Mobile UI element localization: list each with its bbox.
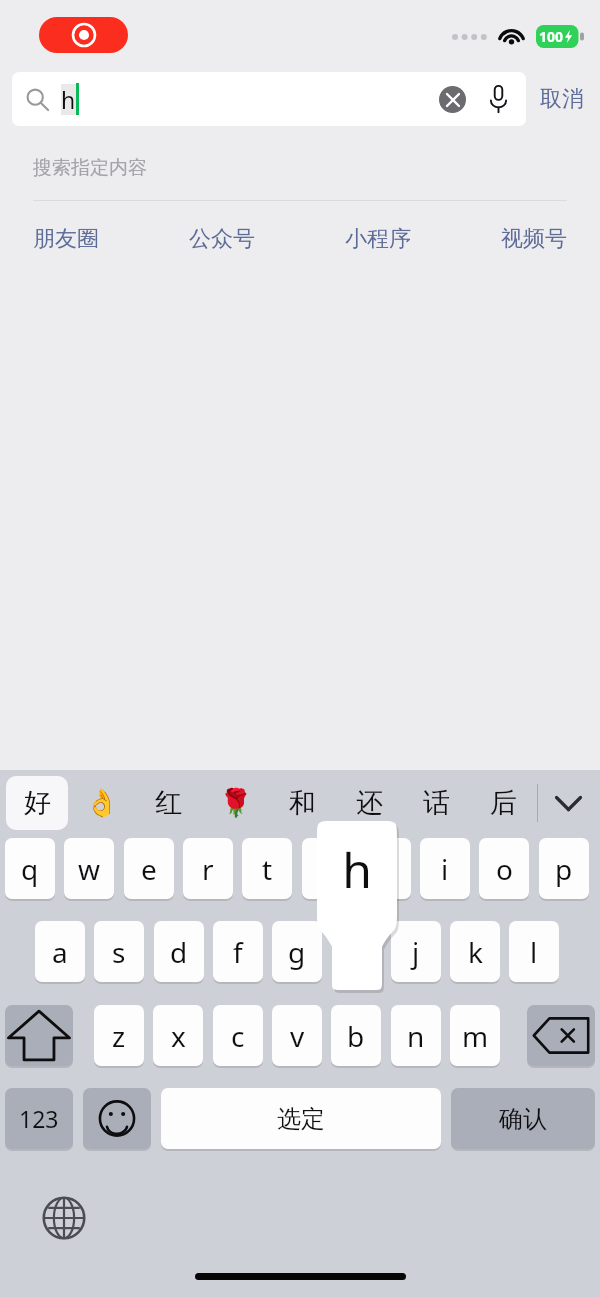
button[interactable]: 视频号 (495, 217, 573, 261)
staticText: 公众号 (189, 225, 255, 253)
button[interactable]: c (213, 1005, 263, 1066)
staticText: e (141, 850, 157, 888)
button[interactable]: m (450, 1005, 500, 1066)
staticText: 视频号 (501, 225, 567, 253)
button[interactable]: r (183, 838, 233, 899)
button[interactable]: 和 (269, 770, 336, 836)
staticText: m (462, 1017, 489, 1055)
button[interactable]: i (420, 838, 470, 899)
staticText: d (170, 933, 188, 971)
staticText: 和 (289, 786, 316, 820)
button[interactable]: w (64, 838, 114, 899)
button[interactable]: x (153, 1005, 203, 1066)
staticText: 小程序 (345, 225, 411, 253)
staticText: s (112, 933, 126, 971)
button[interactable]: l (509, 921, 559, 982)
button[interactable]: u (361, 838, 411, 899)
staticText: a (52, 933, 68, 971)
button[interactable]: 选定 (161, 1088, 441, 1149)
staticText: l (530, 933, 538, 971)
button[interactable]: a (35, 921, 85, 982)
staticText: 100 (539, 27, 564, 46)
button[interactable]: Hide keyboard (538, 770, 598, 836)
button[interactable]: t (242, 838, 292, 899)
button[interactable]: Clear text (439, 86, 466, 113)
button[interactable]: j (391, 921, 441, 982)
button[interactable]: h (12, 72, 526, 126)
button[interactable]: v (272, 1005, 322, 1066)
staticText: f (233, 933, 243, 971)
staticText: k (468, 933, 483, 971)
staticText: c (231, 1017, 245, 1055)
button[interactable]: Shift (5, 1005, 73, 1066)
button[interactable]: k (450, 921, 500, 982)
staticText: n (407, 1017, 425, 1055)
button[interactable]: o (479, 838, 529, 899)
button[interactable]: 确认 (451, 1088, 595, 1149)
button[interactable]: 👌 (68, 770, 135, 836)
staticText: 123 (19, 1103, 59, 1134)
button[interactable]: Emoji (83, 1088, 151, 1149)
button[interactable]: y (302, 838, 352, 899)
staticText: 取消 (540, 85, 584, 113)
staticText: 后 (490, 786, 517, 820)
button[interactable]: z (94, 1005, 144, 1066)
button[interactable]: q (5, 838, 55, 899)
staticText: o (496, 850, 513, 888)
staticText: j (412, 933, 420, 971)
staticText: g (288, 933, 306, 971)
staticText: i (441, 850, 449, 888)
button[interactable]: f (213, 921, 263, 982)
staticText: 话 (423, 786, 450, 820)
button[interactable]: h (317, 821, 397, 990)
staticText: h (61, 84, 76, 115)
staticText: z (112, 1017, 126, 1055)
staticText: 选定 (277, 1104, 325, 1134)
button[interactable]: p (539, 838, 589, 899)
staticText: b (347, 1017, 365, 1055)
staticText: 红 (155, 786, 182, 820)
button[interactable]: Recording indicator (39, 17, 128, 53)
button[interactable]: b (331, 1005, 381, 1066)
button[interactable]: 话 (403, 770, 470, 836)
button[interactable]: 好 (6, 776, 68, 830)
button[interactable]: g (272, 921, 322, 982)
staticText: p (555, 850, 573, 888)
staticText: 还 (356, 786, 383, 820)
button[interactable]: Backspace (527, 1005, 595, 1066)
button[interactable]: 小程序 (339, 217, 417, 261)
staticText: 确认 (499, 1104, 547, 1134)
button[interactable]: 后 (470, 770, 537, 836)
staticText: 搜索指定内容 (33, 156, 147, 180)
staticText: q (21, 850, 39, 888)
staticText: w (78, 850, 101, 888)
button[interactable]: Switch keyboard language (41, 1195, 87, 1241)
button[interactable]: 公众号 (183, 217, 261, 261)
button[interactable]: 朋友圈 (27, 217, 105, 261)
staticText: 好 (24, 786, 51, 820)
button[interactable]: 还 (336, 770, 403, 836)
button[interactable]: 123 (5, 1088, 73, 1149)
staticText: x (171, 1017, 186, 1055)
button[interactable]: d (154, 921, 204, 982)
button[interactable]: 取消 (526, 75, 590, 123)
staticText: t (262, 850, 273, 888)
staticText: 👌 (85, 787, 119, 819)
button[interactable]: Voice input (482, 83, 514, 115)
staticText: 🌹 (219, 787, 253, 819)
button[interactable]: 红 (135, 770, 202, 836)
button[interactable]: n (391, 1005, 441, 1066)
staticText: h (317, 837, 397, 902)
button[interactable]: 🌹 (202, 770, 269, 836)
staticText: 朋友圈 (33, 225, 99, 253)
staticText: r (202, 850, 214, 888)
button[interactable]: e (124, 838, 174, 899)
staticText: v (290, 1017, 305, 1055)
button[interactable]: s (94, 921, 144, 982)
